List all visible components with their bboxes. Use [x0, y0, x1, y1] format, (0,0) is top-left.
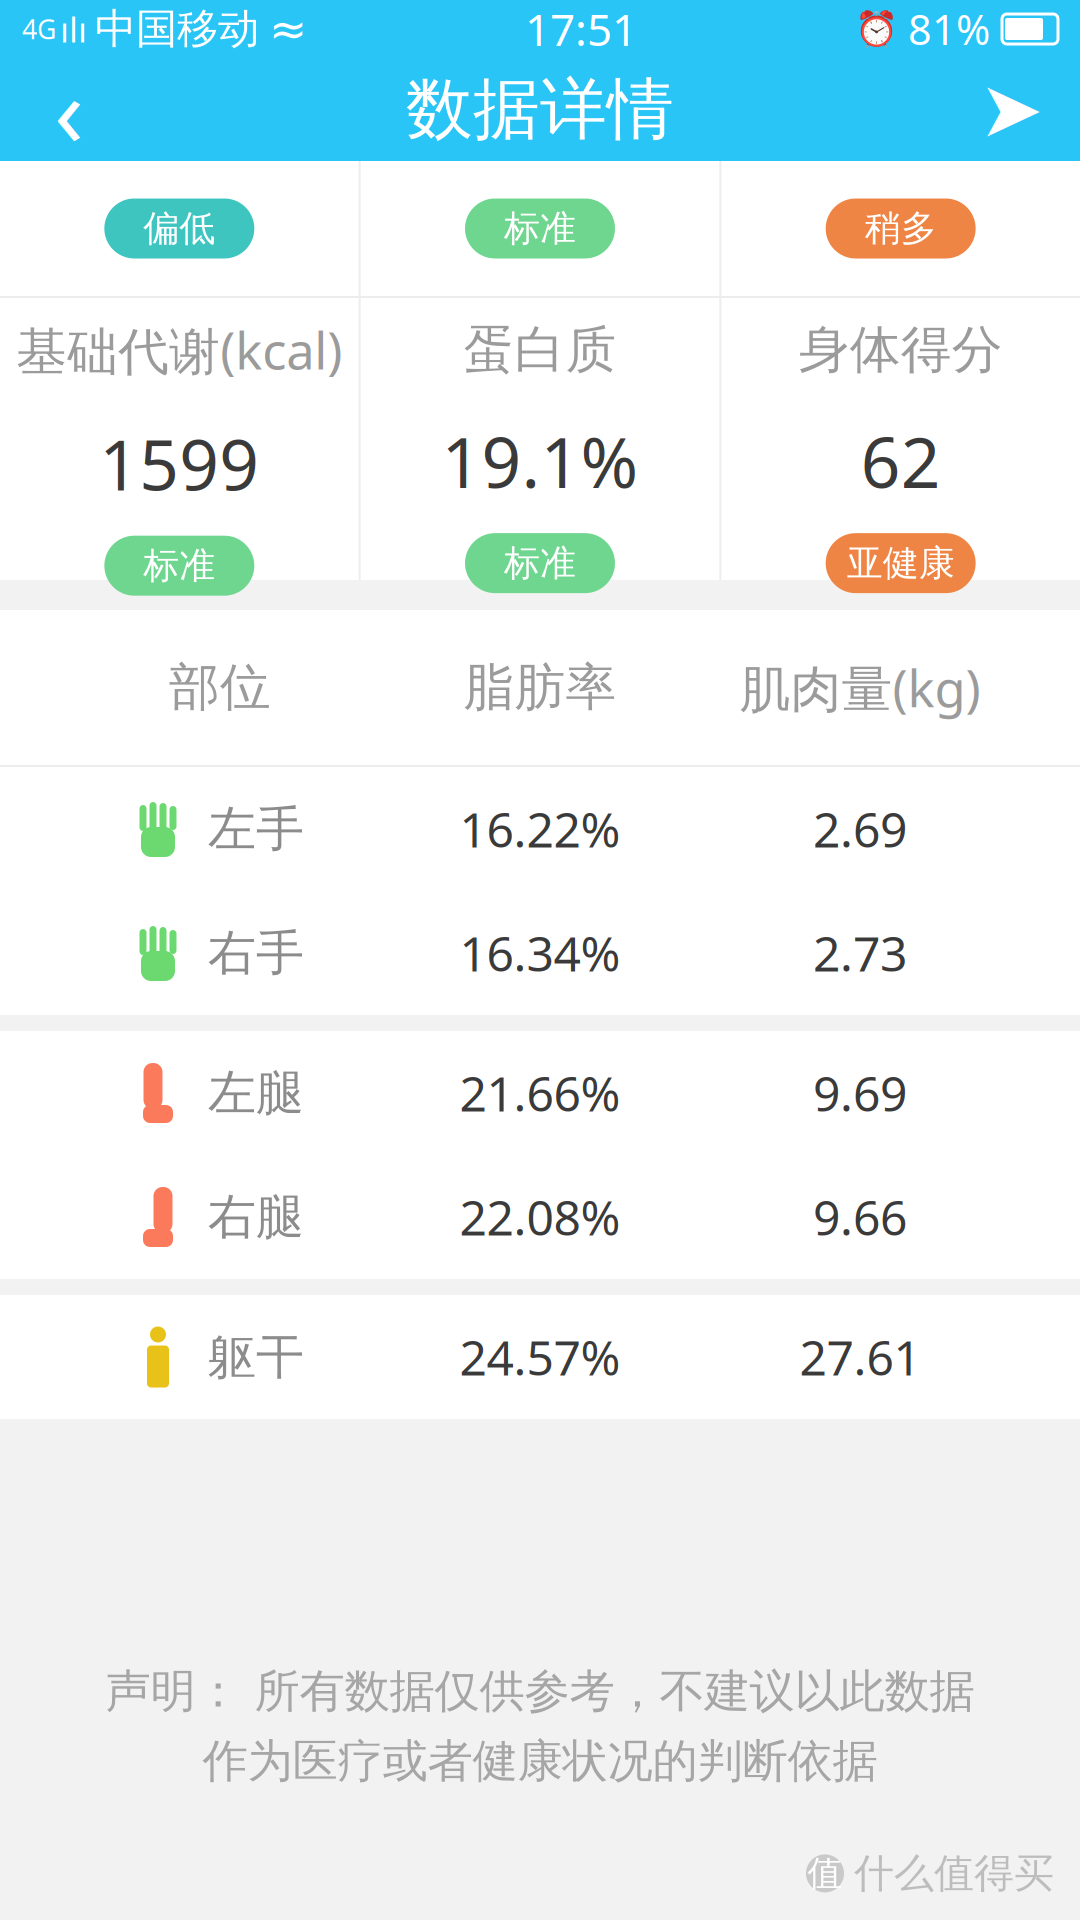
staticText: 什么值得买 [854, 1849, 1054, 1898]
staticText: 标准 [504, 541, 576, 585]
staticText: 27.61 [799, 1325, 920, 1389]
staticText: 24.57% [459, 1325, 620, 1389]
staticText: 16.22% [459, 797, 620, 861]
button[interactable]: 躯干 [0, 1295, 1080, 1419]
staticText: 62 [861, 415, 941, 507]
staticText: 部位 [169, 656, 271, 719]
staticText: 作为医疗或者健康状况的判断依据 [202, 1733, 877, 1789]
staticText: 2.73 [813, 921, 907, 985]
staticText: 16.34% [459, 921, 620, 985]
staticText: 标准 [504, 206, 576, 251]
staticText: 躯干 [208, 1327, 304, 1386]
staticText: 数据详情 [406, 69, 674, 150]
staticText: 22.08% [459, 1185, 620, 1249]
staticText: ‹ [54, 46, 84, 173]
button[interactable]: Back [14, 59, 124, 159]
button[interactable]: 左手 [0, 767, 1080, 891]
staticText: 中国移动 [95, 4, 259, 54]
button[interactable]: 左腿 [0, 1031, 1080, 1155]
staticText: 蛋白质 [463, 319, 616, 381]
staticText: 1599 [99, 418, 259, 510]
staticText: 右手 [208, 923, 304, 982]
staticText: 2.69 [813, 797, 907, 861]
staticText: 肌肉量(kg) [739, 654, 980, 721]
button[interactable]: Share [956, 59, 1066, 159]
staticText: 9.69 [813, 1061, 907, 1125]
staticText: 右腿 [208, 1187, 304, 1246]
staticText: 左腿 [208, 1063, 304, 1122]
staticText: 9.66 [813, 1185, 907, 1249]
button[interactable]: 右手 [0, 891, 1080, 1015]
staticText: ılı [60, 6, 87, 52]
staticText: 声明： 所有数据仅供参考，不建议以此数据 [105, 1663, 974, 1719]
staticText: 值 [807, 1852, 842, 1895]
staticText: ➤ [978, 66, 1043, 153]
staticText: 脂肪率 [463, 656, 616, 719]
staticText: ≈ [269, 3, 307, 55]
staticText: ⏰ [855, 9, 898, 49]
staticText: 21.66% [459, 1061, 620, 1125]
button[interactable]: 右腿 [0, 1155, 1080, 1279]
staticText: 左手 [208, 799, 304, 858]
staticText: 标准 [143, 544, 215, 588]
staticText: 偏低 [143, 206, 215, 251]
staticText: 稍多 [865, 206, 937, 251]
staticText: 19.1% [441, 415, 638, 507]
staticText: 身体得分 [799, 319, 1003, 381]
staticText: 81% [908, 2, 990, 56]
staticText: 基础代谢(kcal) [16, 316, 342, 384]
staticText: 亚健康 [847, 541, 955, 585]
staticText: 4G [22, 11, 56, 47]
staticText: 17:51 [525, 0, 637, 58]
